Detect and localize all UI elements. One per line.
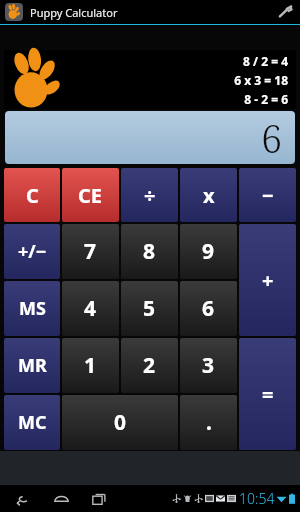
button[interactable]: Back bbox=[10, 486, 36, 512]
staticText: 6 bbox=[261, 112, 283, 164]
staticText: +/− bbox=[18, 239, 47, 264]
button[interactable]: x bbox=[180, 168, 237, 222]
staticText: 3 bbox=[202, 351, 215, 380]
staticText: MS bbox=[19, 296, 46, 321]
button[interactable]: 6 bbox=[5, 111, 295, 164]
staticText: 10:54 bbox=[239, 489, 275, 508]
staticText: 0 bbox=[114, 408, 127, 437]
staticText: C bbox=[26, 182, 39, 209]
button[interactable]: . bbox=[180, 395, 237, 450]
staticText: 6 x 3 = 18 bbox=[234, 72, 288, 88]
button[interactable]: 3 bbox=[180, 338, 237, 393]
button[interactable]: 7 bbox=[62, 224, 119, 279]
staticText: Puppy Calculator bbox=[30, 5, 118, 20]
button[interactable]: 9 bbox=[180, 224, 237, 279]
staticText: 8 bbox=[143, 237, 156, 266]
staticText: x bbox=[203, 182, 215, 209]
button[interactable]: − bbox=[239, 168, 296, 222]
staticText: MR bbox=[18, 353, 47, 378]
button[interactable]: Home bbox=[48, 486, 74, 512]
button[interactable]: Settings bbox=[273, 0, 297, 24]
staticText: MC bbox=[18, 410, 47, 435]
staticText: + bbox=[262, 267, 274, 294]
staticText: 2 bbox=[143, 351, 156, 380]
button[interactable]: 8 / 2 = 4 bbox=[4, 50, 296, 109]
button[interactable]: 8 bbox=[121, 224, 178, 279]
button[interactable]: = bbox=[239, 338, 296, 450]
staticText: ÷ bbox=[144, 182, 156, 209]
staticText: 5 bbox=[143, 294, 156, 323]
staticText: − bbox=[262, 182, 274, 209]
button[interactable]: + bbox=[239, 224, 296, 336]
button[interactable]: CE bbox=[62, 168, 119, 222]
staticText: = bbox=[262, 381, 274, 408]
button[interactable]: MR bbox=[4, 338, 60, 393]
button[interactable]: 4 bbox=[62, 281, 119, 336]
button[interactable]: 0 bbox=[62, 395, 178, 450]
staticText: 7 bbox=[84, 237, 97, 266]
button[interactable]: Recent apps bbox=[86, 486, 112, 512]
staticText: 9 bbox=[202, 237, 215, 266]
staticText: . bbox=[206, 408, 212, 437]
button[interactable]: App icon bbox=[5, 3, 23, 21]
button[interactable]: +/− bbox=[4, 224, 60, 279]
button[interactable]: C bbox=[4, 168, 60, 222]
staticText: 8 - 2 = 6 bbox=[244, 91, 288, 107]
button[interactable]: 6 bbox=[180, 281, 237, 336]
staticText: 1 bbox=[84, 351, 97, 380]
staticText: 4 bbox=[84, 294, 97, 323]
button[interactable]: MC bbox=[4, 395, 60, 450]
staticText: CE bbox=[78, 182, 103, 209]
button[interactable]: ÷ bbox=[121, 168, 178, 222]
staticText: 8 / 2 = 4 bbox=[243, 53, 288, 69]
button[interactable]: 2 bbox=[121, 338, 178, 393]
button[interactable]: MS bbox=[4, 281, 60, 336]
staticText: 6 bbox=[202, 294, 215, 323]
button[interactable]: 5 bbox=[121, 281, 178, 336]
button[interactable]: 1 bbox=[62, 338, 119, 393]
